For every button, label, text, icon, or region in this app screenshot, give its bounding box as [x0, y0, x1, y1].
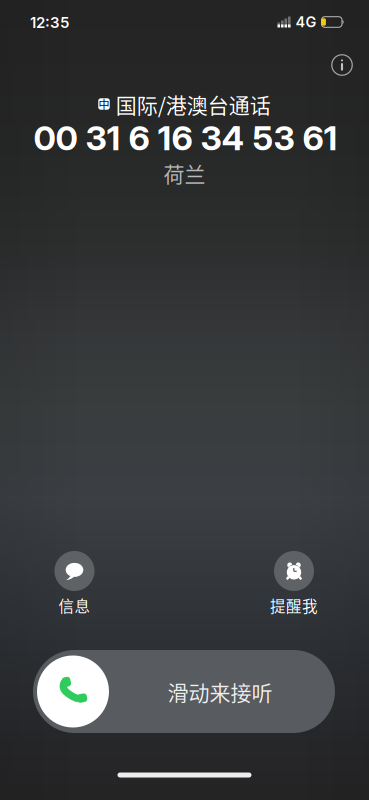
staticText: 中 — [98, 96, 109, 112]
staticText: 国际/港澳台通话 — [116, 89, 271, 119]
button[interactable]: 提醒我 — [246, 551, 342, 621]
staticText: 提醒我 — [270, 594, 318, 617]
staticText: 4G — [295, 13, 316, 31]
button[interactable]: 信息 — [26, 551, 122, 621]
button[interactable]: Call details — [325, 48, 359, 82]
button[interactable]: 滑动来接听 — [33, 650, 335, 733]
staticText: 00 31 6 16 34 53 61 — [33, 117, 337, 158]
staticText: 荷兰 — [163, 158, 205, 188]
staticText: 信息 — [58, 594, 90, 617]
staticText: 12:35 — [30, 13, 69, 31]
staticText: 滑动来接听 — [167, 676, 272, 707]
